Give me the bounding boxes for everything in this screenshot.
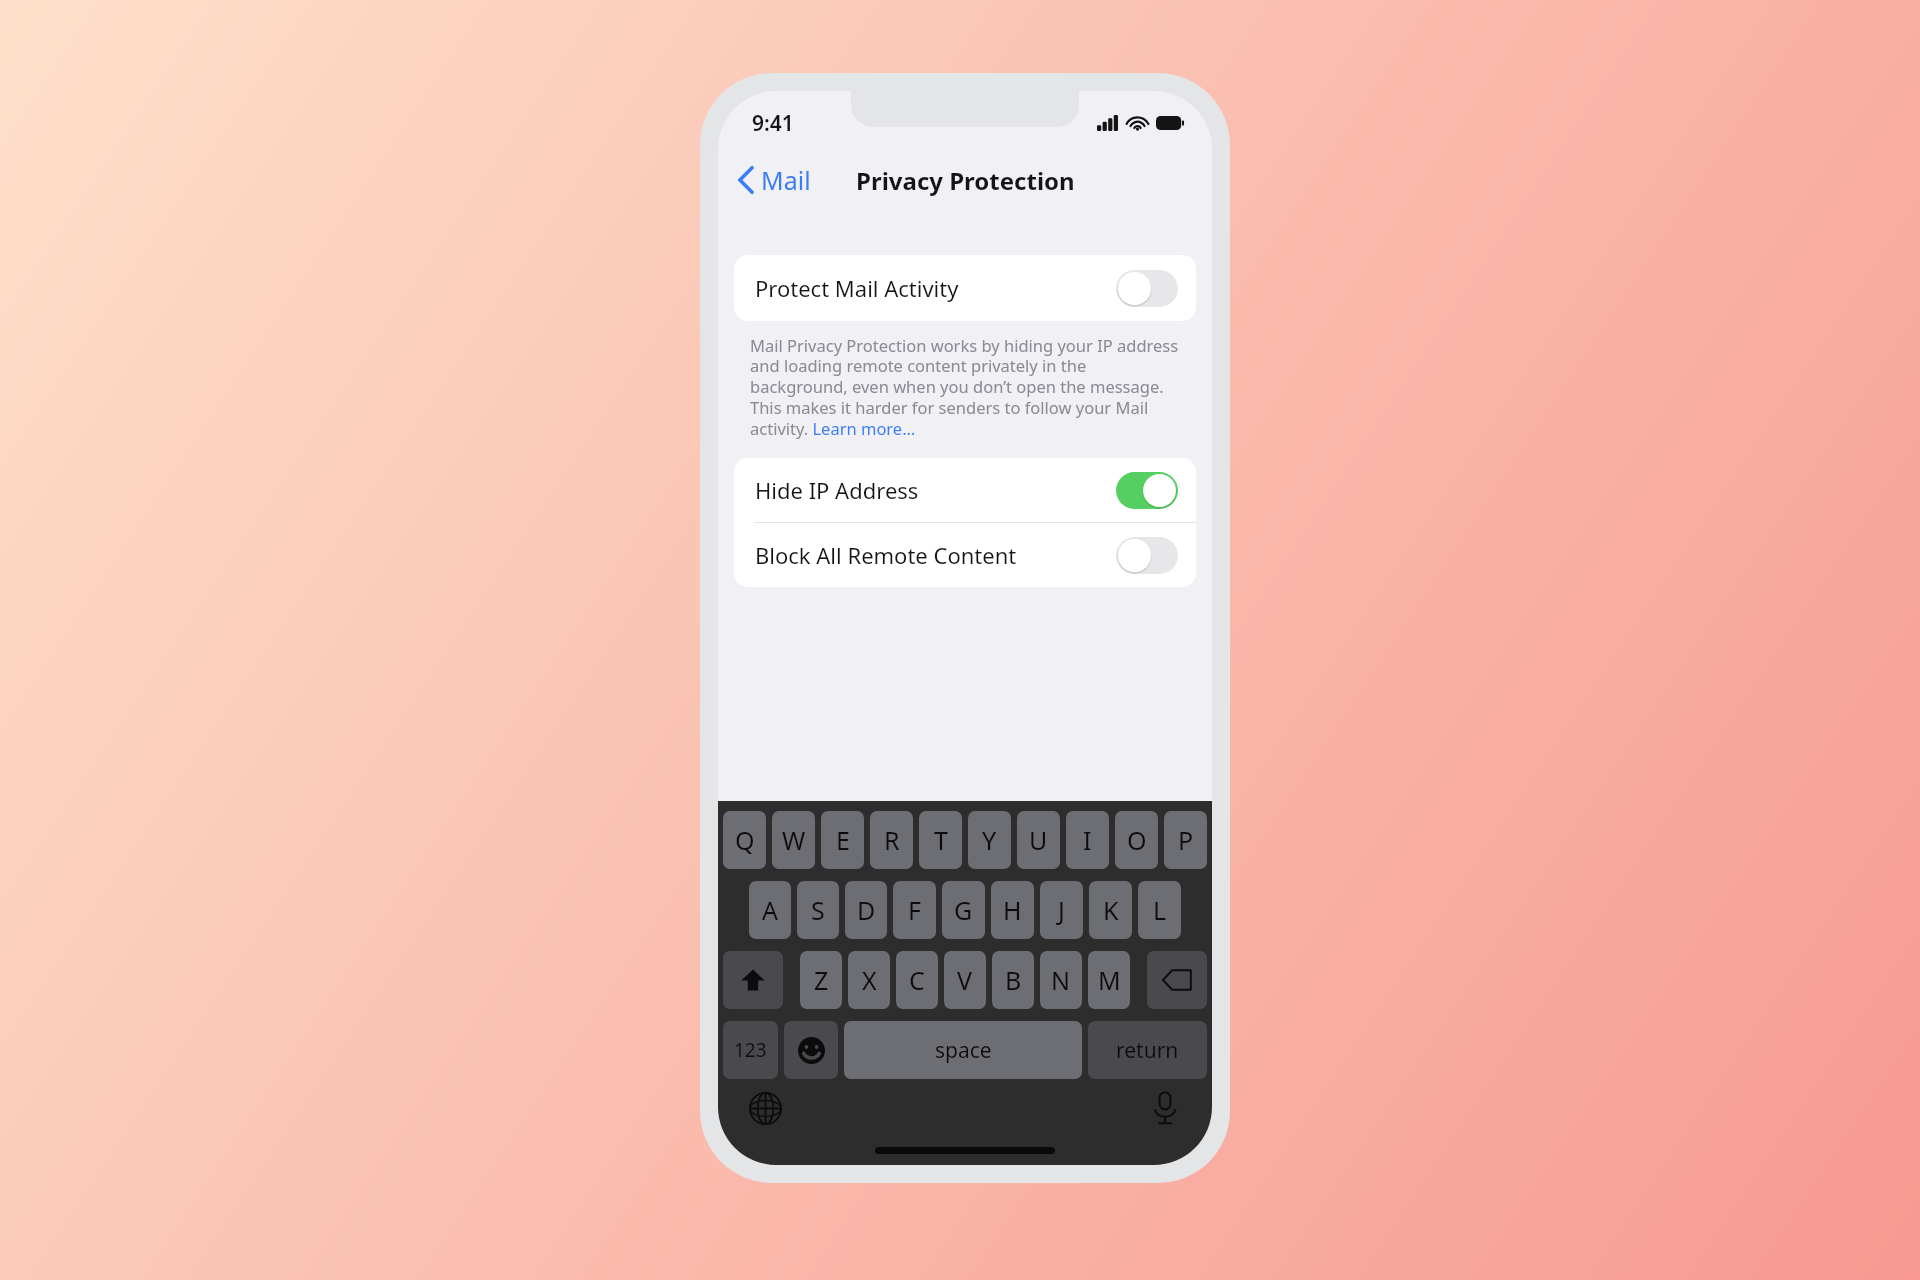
staticText: O [1127,823,1147,857]
button[interactable]: Toggle off [1116,537,1178,574]
staticText: L [1153,893,1167,927]
button[interactable]: M [1088,951,1130,1009]
button[interactable]: Change keyboard [744,1087,786,1129]
button[interactable]: G [942,881,985,939]
staticText: Block All Remote Content [755,540,1017,570]
button[interactable]: C [896,951,938,1009]
button[interactable]: U [1017,811,1060,869]
staticText: P [1178,823,1194,857]
button[interactable]: Emoji [784,1021,838,1079]
staticText: N [1051,963,1071,997]
button[interactable]: V [944,951,986,1009]
button[interactable]: A [749,881,791,939]
staticText: V [957,963,973,997]
button[interactable]: Shift [723,951,783,1009]
button[interactable]: Mail [732,157,817,203]
staticText: I [1083,823,1092,857]
staticText: space [935,1036,992,1065]
button[interactable]: K [1089,881,1132,939]
staticText: Hide IP Address [755,475,919,505]
staticText: D [857,893,876,927]
staticText: F [908,893,921,927]
button[interactable]: Toggle off [1116,270,1178,307]
staticText: U [1029,823,1048,857]
button[interactable]: T [919,811,962,869]
staticText: E [836,823,850,857]
button[interactable]: Z [800,951,842,1009]
button[interactable]: Q [723,811,766,869]
staticText: Mail Privacy Protection works by hiding … [750,334,1180,440]
staticText: J [1058,893,1065,927]
staticText: Z [814,963,829,997]
staticText: R [884,823,900,857]
staticText: H [1003,893,1022,927]
staticText: 9:41 [752,109,794,138]
button[interactable]: H [991,881,1034,939]
staticText: 123 [734,1037,767,1063]
button[interactable]: S [797,881,839,939]
button[interactable]: Protect Mail Activity [734,255,1196,321]
button[interactable]: P [1164,811,1207,869]
button[interactable]: O [1115,811,1158,869]
staticText: X [862,963,877,997]
button[interactable]: D [845,881,887,939]
staticText: Protect Mail Activity [755,273,959,303]
button[interactable]: J [1040,881,1083,939]
staticText: A [762,893,778,927]
staticText: Privacy Protection [856,164,1075,197]
staticText: S [811,893,825,927]
button[interactable]: Delete [1147,951,1207,1009]
button[interactable]: Toggle on [1116,472,1178,509]
staticText: Y [982,823,997,857]
staticText: T [934,823,948,857]
button[interactable]: I [1066,811,1109,869]
button[interactable]: space [844,1021,1082,1079]
staticText: B [1005,963,1022,997]
button[interactable]: W [772,811,815,869]
button[interactable]: 123 [723,1021,778,1079]
staticText: return [1116,1036,1179,1065]
button[interactable]: N [1040,951,1082,1009]
staticText: M [1098,963,1121,997]
button[interactable]: E [821,811,864,869]
button[interactable]: B [992,951,1034,1009]
button[interactable]: X [848,951,890,1009]
staticText: Q [735,823,755,857]
staticText: W [782,823,806,857]
button[interactable]: F [893,881,936,939]
staticText: C [909,963,925,997]
button[interactable]: R [870,811,913,869]
staticText: K [1103,893,1119,927]
button[interactable]: Block All Remote Content [734,523,1196,587]
button[interactable]: return [1088,1021,1207,1079]
button[interactable]: Y [968,811,1011,869]
staticText: G [954,893,973,927]
button[interactable]: Hide IP Address [734,458,1196,522]
button[interactable]: L [1138,881,1181,939]
staticText: Mail [761,163,811,197]
button[interactable]: Dictate [1144,1087,1186,1129]
